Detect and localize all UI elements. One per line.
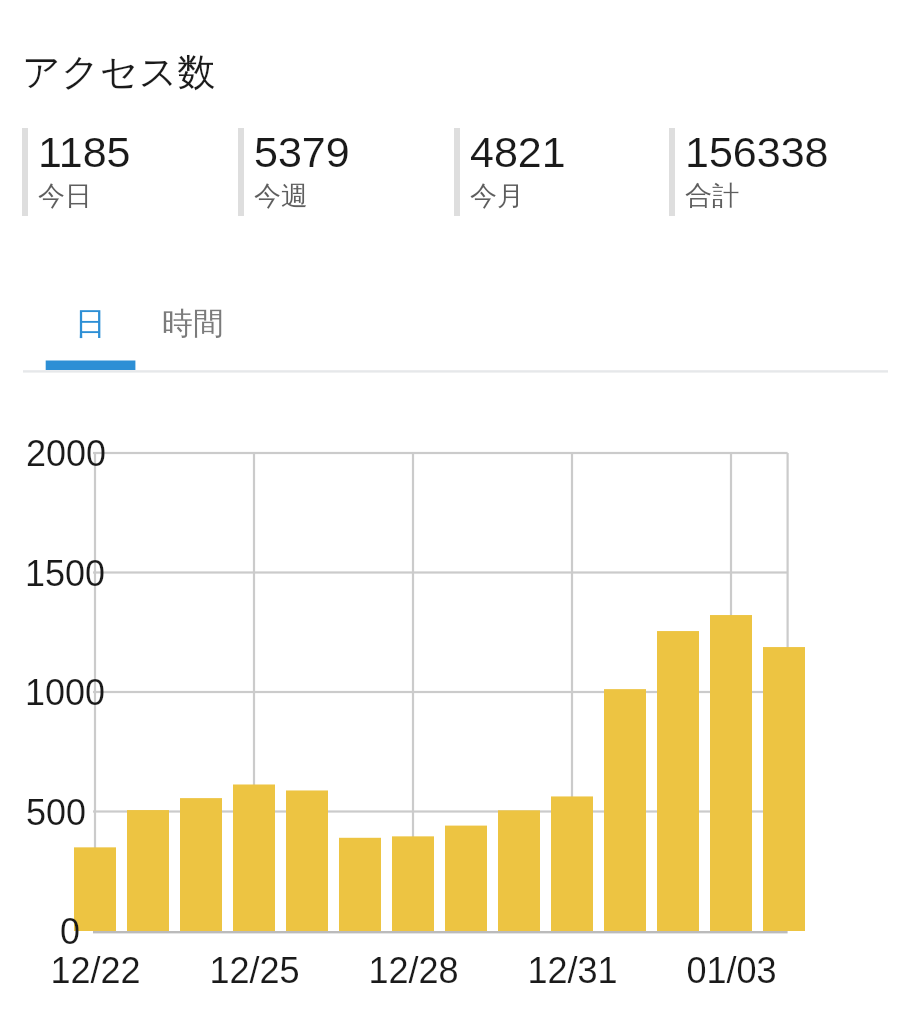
button[interactable]: 5379 — [238, 128, 448, 216]
staticText: 01/03 — [686, 950, 777, 990]
button[interactable]: 4821 — [454, 128, 664, 216]
staticText: 1185 — [38, 128, 131, 176]
staticText: 12/28 — [368, 950, 459, 990]
staticText: 12/31 — [527, 950, 618, 990]
staticText: 156338 — [685, 128, 829, 176]
staticText: 1000 — [25, 672, 106, 712]
staticText: 500 — [26, 792, 87, 832]
staticText: 今日 — [38, 179, 92, 213]
staticText: 5379 — [254, 128, 350, 176]
button[interactable]: 156338 — [669, 128, 879, 216]
staticText: 時間 — [162, 304, 224, 343]
button[interactable]: 日 — [46, 292, 136, 370]
button[interactable]: 時間 — [146, 292, 240, 370]
staticText: アクセス数 — [22, 48, 216, 96]
staticText: 1500 — [25, 553, 106, 593]
staticText: 今週 — [254, 179, 308, 213]
staticText: 合計 — [685, 179, 739, 213]
staticText: 12/22 — [50, 950, 141, 990]
staticText: 2000 — [26, 433, 107, 473]
staticText: 4821 — [470, 128, 566, 176]
staticText: 今月 — [470, 179, 524, 213]
staticText: 0 — [60, 911, 81, 951]
staticText: 日 — [75, 304, 106, 343]
button[interactable]: 1185 — [22, 128, 232, 216]
staticText: 12/25 — [209, 950, 300, 990]
